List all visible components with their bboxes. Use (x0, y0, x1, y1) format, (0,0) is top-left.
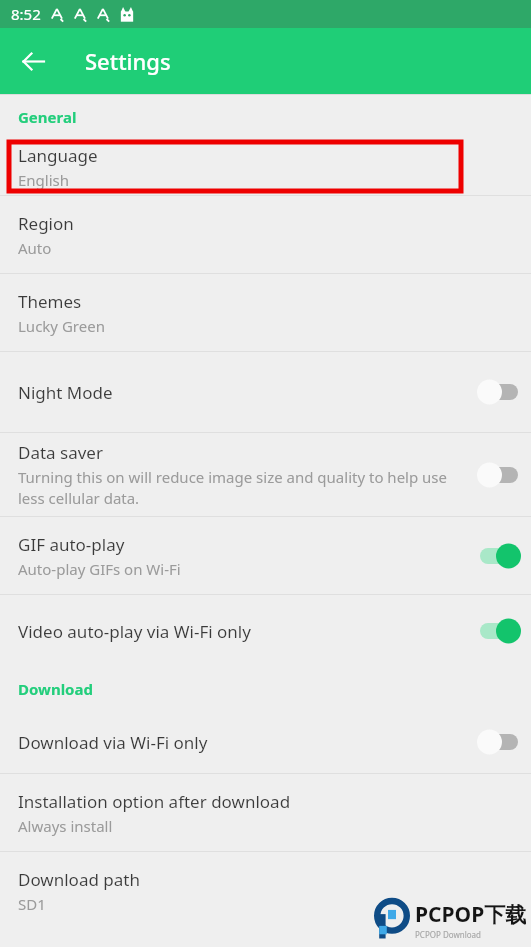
button[interactable]: Data saver (0, 433, 531, 516)
button[interactable]: Region (0, 196, 531, 273)
staticText: PCPOP Download (415, 929, 481, 940)
staticText: Download path (18, 868, 140, 891)
staticText: Always install (18, 816, 113, 836)
staticText: SD1 (18, 894, 46, 914)
button[interactable]: Themes (0, 274, 531, 351)
button[interactable]: Switch off (471, 372, 527, 412)
button[interactable]: GIF auto-play (0, 517, 531, 594)
button[interactable]: Switch on (471, 611, 527, 651)
staticText: General (18, 107, 77, 127)
button[interactable]: Back (11, 39, 55, 83)
button[interactable]: Video auto-play via Wi-Fi only (0, 595, 531, 667)
button[interactable]: Switch on (471, 536, 527, 576)
staticText: Data saver (18, 441, 103, 464)
staticText: English (18, 170, 70, 190)
staticText: GIF auto-play (18, 533, 125, 556)
button[interactable]: Night Mode (0, 352, 531, 432)
button[interactable]: Installation option after download (0, 774, 531, 851)
staticText: Region (18, 212, 74, 235)
staticText: Video auto-play via Wi-Fi only (18, 620, 251, 643)
staticText: 8:52 (11, 4, 41, 24)
button[interactable]: Switch off (471, 722, 527, 762)
staticText: Lucky Green (18, 316, 105, 336)
staticText: Night Mode (18, 381, 113, 404)
staticText: Turning this on will reduce image size a… (18, 467, 467, 509)
staticText: Settings (85, 46, 171, 76)
staticText: Auto-play GIFs on Wi-Fi (18, 559, 181, 579)
button[interactable]: Language (0, 139, 531, 195)
staticText: Download via Wi-Fi only (18, 731, 208, 754)
staticText: Installation option after download (18, 790, 291, 813)
staticText: Themes (18, 290, 82, 313)
staticText: PCPOP下载 (415, 900, 527, 929)
button[interactable]: Switch off (471, 455, 527, 495)
staticText: Language (18, 144, 98, 167)
button[interactable]: Download path (0, 852, 531, 929)
button[interactable]: Download via Wi-Fi only (0, 711, 531, 773)
staticText: Download (18, 679, 93, 699)
staticText: Auto (18, 238, 52, 258)
